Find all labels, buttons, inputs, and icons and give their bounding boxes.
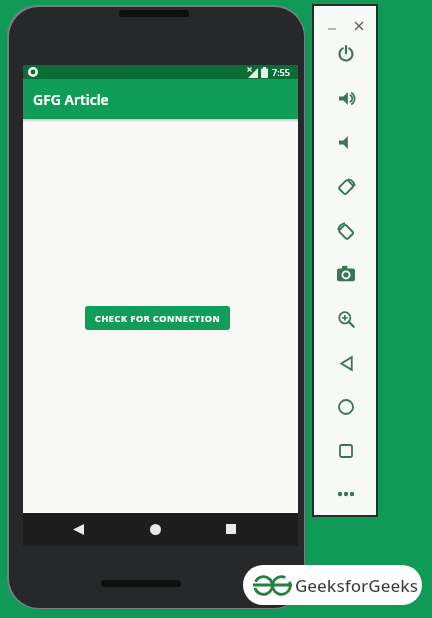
staticText: GeeksforGeeks xyxy=(295,574,418,597)
button[interactable] xyxy=(335,43,357,65)
button[interactable] xyxy=(335,483,357,505)
button[interactable] xyxy=(150,524,161,535)
button[interactable] xyxy=(335,440,357,462)
button[interactable] xyxy=(335,308,357,330)
button[interactable] xyxy=(355,22,363,30)
button[interactable] xyxy=(335,87,357,109)
button[interactable] xyxy=(335,131,357,153)
button[interactable] xyxy=(335,176,357,198)
button[interactable]: CHECK FOR CONNECTION xyxy=(85,306,230,330)
staticText: CHECK FOR CONNECTION xyxy=(95,312,221,324)
button[interactable] xyxy=(335,263,357,285)
button[interactable]: GeeksforGeeks xyxy=(243,565,422,605)
button[interactable] xyxy=(335,396,357,418)
button[interactable] xyxy=(73,524,84,535)
button[interactable] xyxy=(335,220,357,242)
staticText: GFG Article xyxy=(33,90,109,109)
staticText: 7:55 xyxy=(272,66,290,78)
button[interactable] xyxy=(335,352,357,374)
